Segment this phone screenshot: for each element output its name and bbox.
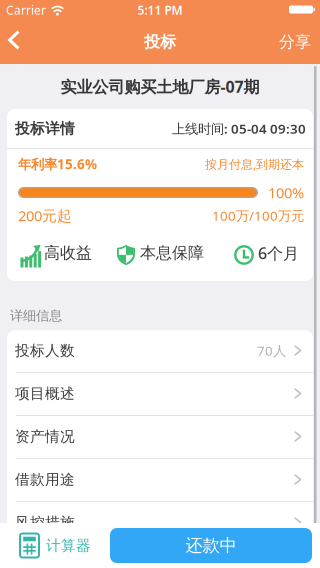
staticText: Carrier — [6, 2, 46, 18]
staticText: 风控措施 — [15, 513, 75, 531]
staticText: 本息保障 — [140, 243, 204, 263]
staticText: 计算器 — [46, 536, 91, 554]
staticText: 投标人数 — [15, 341, 75, 359]
staticText: 上线时间: 05-04 09:30 — [172, 120, 306, 137]
button[interactable]: 计算器 — [0, 532, 91, 558]
staticText: 借款用途 — [15, 470, 75, 488]
staticText: 70人 — [257, 342, 286, 359]
staticText: 还款中 — [185, 535, 236, 556]
staticText: 投标 — [144, 32, 176, 52]
button[interactable]: 项目概述 — [7, 373, 313, 416]
button[interactable]: 分享 — [279, 21, 320, 63]
staticText: 实业公司购买土地厂房-07期 — [60, 76, 259, 97]
staticText: 高收益 — [44, 243, 92, 263]
button[interactable]: 投标人数 — [7, 330, 313, 373]
button[interactable] — [0, 20, 20, 64]
staticText: 6个月 — [258, 242, 299, 264]
button[interactable]: 资产情况 — [7, 416, 313, 459]
button[interactable]: 还款中 — [110, 528, 312, 563]
staticText: 详细信息 — [10, 308, 62, 324]
staticText: 200元起 — [18, 206, 72, 225]
staticText: 按月付息,到期还本 — [205, 156, 304, 172]
staticText: 资产情况 — [15, 427, 75, 445]
staticText: 100万/100万元 — [212, 207, 304, 224]
staticText: 5:11 PM — [137, 2, 182, 18]
staticText: 100% — [268, 183, 304, 202]
staticText: 分享 — [279, 32, 311, 52]
button[interactable]: 风控措施 — [7, 502, 313, 545]
staticText: 项目概述 — [15, 384, 75, 402]
staticText: 年利率15.6% — [18, 155, 97, 173]
staticText: 投标详情 — [15, 119, 75, 137]
button[interactable]: 借款用途 — [7, 459, 313, 502]
